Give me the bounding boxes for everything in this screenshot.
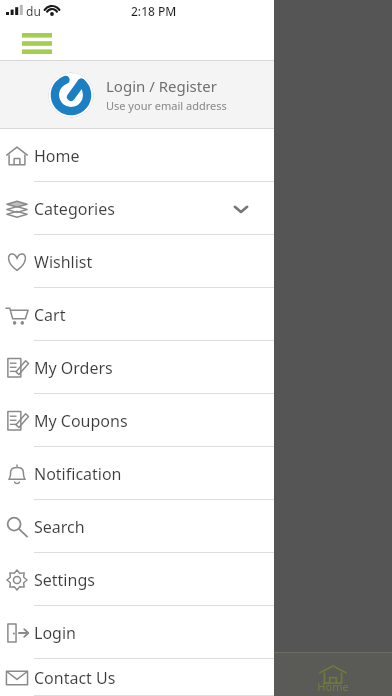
button[interactable]: Wishlist [0,235,274,288]
staticText: Login / Register [106,76,217,96]
button[interactable]: Login / Register [0,60,274,129]
staticText: du [26,3,41,19]
staticText: My Orders [34,357,113,379]
staticText: Notification [34,463,122,485]
button[interactable]: My Coupons [0,394,274,447]
staticText: Wishlist [34,251,93,273]
staticText: Contact Us [34,667,116,689]
staticText: My Coupons [34,410,128,432]
button[interactable]: Notification [0,447,274,500]
button[interactable]: Menu [14,26,58,60]
button[interactable]: Categories [0,182,274,235]
button[interactable]: Settings [0,553,274,606]
button[interactable]: Contact Us [0,659,274,696]
button[interactable]: Home [0,129,274,182]
button[interactable]: Cart [0,288,274,341]
staticText: Home [34,145,80,167]
button[interactable]: My Orders [0,341,274,394]
staticText: Search [34,516,85,538]
staticText: Cart [34,304,66,326]
staticText: Settings [34,569,95,591]
button[interactable]: Login [0,606,274,659]
staticText: Home [317,679,349,694]
button[interactable]: Search [0,500,274,553]
staticText: 2:18 PM [131,3,177,19]
staticText: Login [34,622,76,644]
staticText: Categories [34,198,115,220]
staticText: Use your email address [106,98,227,113]
button[interactable]: Home tab [274,652,392,696]
